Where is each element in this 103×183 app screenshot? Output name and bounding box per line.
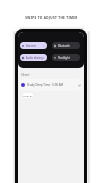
button[interactable]: Audio sharing — [20, 54, 47, 61]
other: Expand — [78, 84, 81, 87]
button[interactable]: Internet — [20, 42, 47, 49]
staticText: Audio sharing — [26, 56, 43, 59]
staticText: Bluetooth — [58, 44, 70, 47]
staticText: SWIPE TO ADJUST THE TIMER — [0, 16, 103, 20]
staticText: Flashlight — [58, 56, 70, 59]
button[interactable]: Study Deep Time · 5:00 AM — [19, 79, 83, 91]
button[interactable]: Clear all — [23, 93, 33, 98]
staticText: Internet — [26, 44, 36, 47]
button[interactable]: Flashlight — [52, 54, 80, 61]
staticText: Silent — [21, 73, 30, 77]
button[interactable]: Bluetooth — [52, 42, 80, 49]
staticText: Study Deep Time · 5:00 AM — [27, 83, 64, 87]
staticText: Clear all — [23, 94, 33, 97]
